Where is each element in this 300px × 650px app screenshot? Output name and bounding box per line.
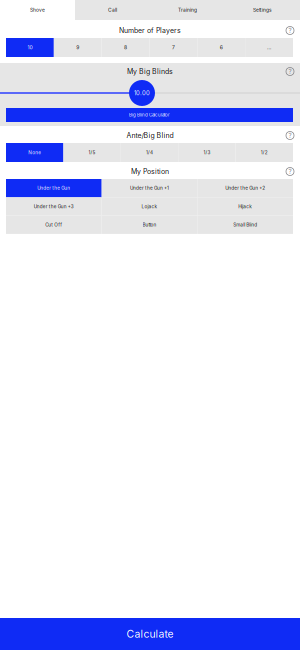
button[interactable]: 1/4 xyxy=(121,143,178,162)
staticText: ? xyxy=(288,68,291,75)
button[interactable]: Under the Gun xyxy=(6,179,102,197)
staticText: 8 xyxy=(124,44,127,50)
button[interactable]: 8 xyxy=(102,38,149,57)
staticText: 1/2 xyxy=(261,150,268,155)
button[interactable]: Call xyxy=(75,0,150,20)
button[interactable]: 10 xyxy=(6,38,54,57)
staticText: Button xyxy=(142,222,156,227)
staticText: 9 xyxy=(76,44,79,50)
button[interactable]: Shove xyxy=(0,0,75,20)
button[interactable]: About My Position xyxy=(284,165,296,177)
button[interactable]: Settings xyxy=(225,0,300,20)
staticText: 1/3 xyxy=(203,150,210,155)
button[interactable]: Cut Off xyxy=(6,216,102,234)
button[interactable]: Small Blind xyxy=(197,216,293,234)
button[interactable]: 9 xyxy=(54,38,102,57)
button[interactable]: Under the Gun +1 xyxy=(102,179,197,197)
staticText: Calculate xyxy=(126,628,173,640)
button[interactable]: Calculate xyxy=(0,618,300,650)
staticText: 6 xyxy=(220,44,223,50)
staticText: Small Blind xyxy=(233,222,257,227)
staticText: 1/5 xyxy=(89,150,96,155)
button[interactable]: Lojack xyxy=(102,197,197,216)
button[interactable]: About Ante/Big Blind xyxy=(284,129,296,141)
staticText: ? xyxy=(288,27,291,34)
staticText: Big Blind Calculator xyxy=(129,112,170,118)
button[interactable]: 6 xyxy=(197,38,245,57)
button[interactable]: 1/2 xyxy=(236,143,293,162)
staticText: 10.00 xyxy=(134,89,150,97)
staticText: Under the Gun +3 xyxy=(34,204,74,209)
button[interactable]: About My Big Blinds xyxy=(284,65,296,77)
button[interactable]: Under the Gun +2 xyxy=(197,179,293,197)
staticText: My Big Blinds xyxy=(127,67,173,76)
button[interactable]: 1/3 xyxy=(178,143,236,162)
staticText: Under the Gun +2 xyxy=(225,185,265,191)
staticText: ? xyxy=(288,168,291,175)
staticText: Number of Players xyxy=(119,26,181,35)
staticText: 1/4 xyxy=(146,150,153,155)
staticText: Hijack xyxy=(238,204,252,209)
staticText: Under the Gun +1 xyxy=(130,185,169,191)
staticText: None xyxy=(28,150,41,155)
button[interactable]: Under the Gun +3 xyxy=(6,197,102,216)
button[interactable]: None xyxy=(6,143,63,162)
staticText: ? xyxy=(288,132,291,139)
button[interactable]: 1/5 xyxy=(63,143,121,162)
staticText: … xyxy=(267,44,271,50)
button[interactable]: 7 xyxy=(149,38,197,57)
staticText: Under the Gun xyxy=(37,185,70,191)
staticText: Settings xyxy=(253,7,272,13)
staticText: Cut Off xyxy=(45,222,62,227)
staticText: Shove xyxy=(30,7,45,13)
staticText: Lojack xyxy=(141,204,157,209)
staticText: My Position xyxy=(131,167,169,176)
button[interactable]: Big Blind Calculator xyxy=(6,108,293,122)
staticText: Call xyxy=(108,7,117,13)
staticText: Ante/Big Blind xyxy=(126,131,173,140)
staticText: Training xyxy=(178,7,197,13)
button[interactable]: Button xyxy=(102,216,197,234)
button[interactable]: Training xyxy=(150,0,225,20)
button[interactable]: Hijack xyxy=(197,197,293,216)
staticText: 10 xyxy=(27,44,32,50)
staticText: 7 xyxy=(172,44,175,50)
button[interactable]: About Number of Players xyxy=(284,24,296,36)
